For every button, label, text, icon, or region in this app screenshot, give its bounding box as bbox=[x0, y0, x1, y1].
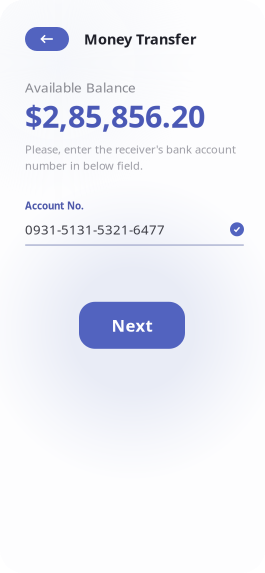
staticText: Next bbox=[111, 314, 152, 337]
staticText: Account No. bbox=[25, 199, 84, 212]
button[interactable]: Back bbox=[25, 27, 69, 51]
staticText: $2,85,856.20 bbox=[25, 95, 205, 137]
staticText: 0931-5131-5321-6477 bbox=[25, 220, 165, 238]
button[interactable]: Next bbox=[79, 302, 185, 349]
staticText: Please, enter the receiver's bank accoun… bbox=[25, 142, 236, 157]
staticText: Money Transfer bbox=[84, 29, 196, 49]
staticText: Available Balance bbox=[25, 78, 136, 96]
staticText: number in below field. bbox=[25, 158, 143, 173]
